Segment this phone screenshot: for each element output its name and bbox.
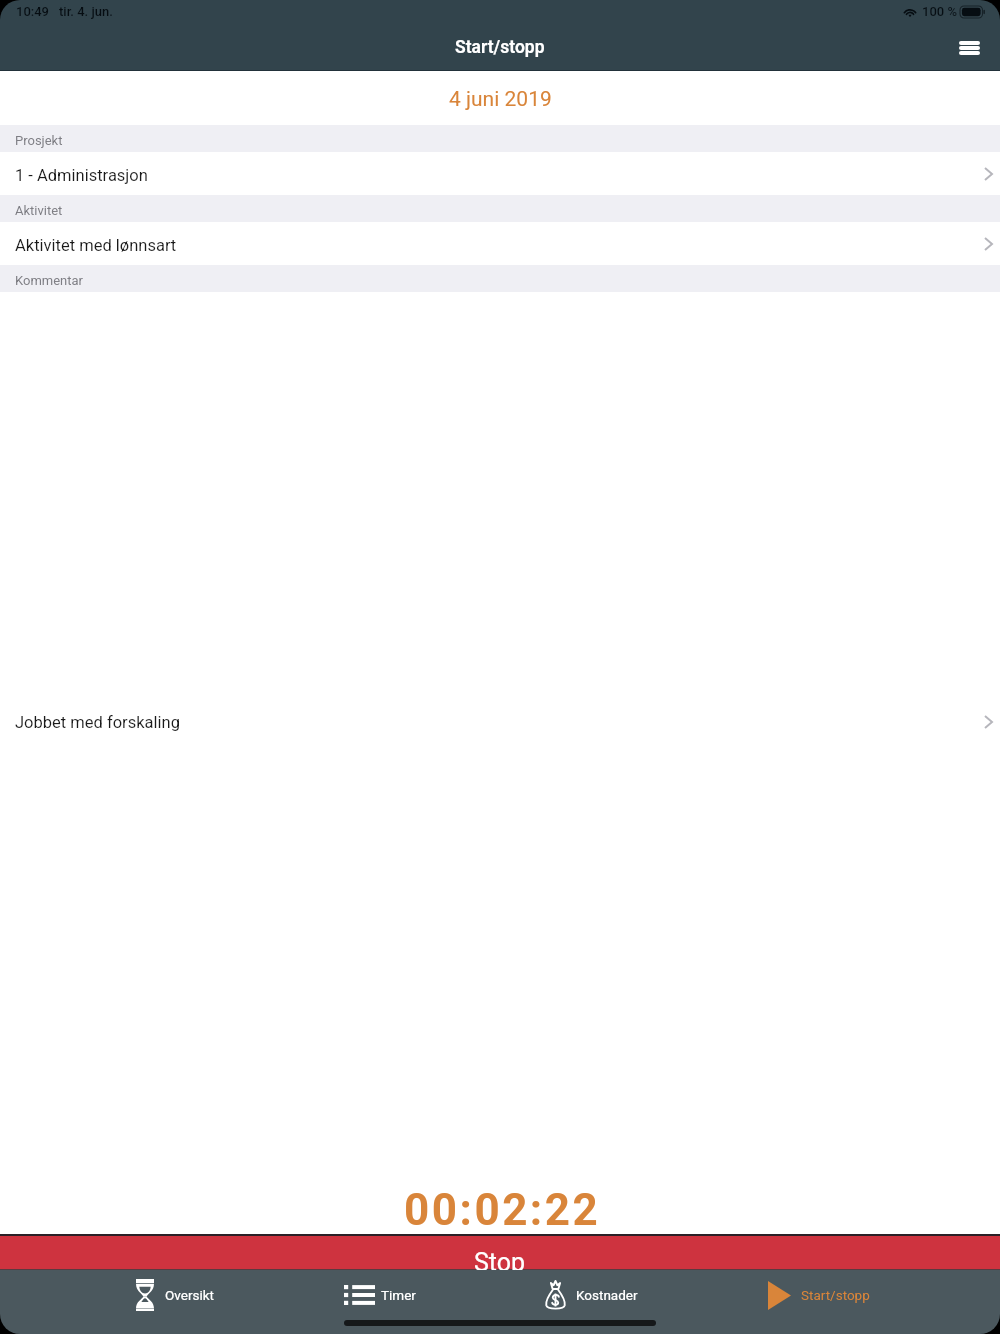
- staticText: 00:02:22: [404, 1184, 601, 1236]
- button[interactable]: Stop: [0, 1234, 1000, 1270]
- staticText: Start/stopp: [455, 37, 545, 58]
- button[interactable]: Kostnader: [545, 1270, 638, 1320]
- staticText: Oversikt: [165, 1287, 214, 1303]
- staticText: Jobbet med forskaling: [15, 713, 180, 732]
- staticText: 100 %: [922, 4, 957, 19]
- staticText: Aktivitet: [15, 203, 63, 218]
- staticText: 10:49: [16, 4, 49, 19]
- button[interactable]: Menu: [947, 27, 991, 71]
- staticText: Kommentar: [15, 273, 84, 288]
- staticText: Start/stopp: [801, 1287, 870, 1303]
- staticText: Stop: [474, 1248, 526, 1277]
- staticText: 1 - Administrasjon: [15, 166, 148, 185]
- staticText: tir. 4. jun.: [59, 4, 113, 19]
- staticText: Kostnader: [576, 1287, 638, 1303]
- button[interactable]: Jobbet med forskaling: [0, 292, 1000, 1152]
- button[interactable]: Start/stopp: [768, 1270, 870, 1320]
- button[interactable]: 1 - Administrasjon: [0, 152, 1000, 195]
- button[interactable]: Oversikt: [136, 1270, 214, 1320]
- staticText: 4 juni 2019: [449, 87, 552, 112]
- button[interactable]: 4 juni 2019: [0, 71, 1000, 125]
- staticText: Prosjekt: [15, 133, 63, 148]
- staticText: Timer: [381, 1287, 416, 1303]
- button[interactable]: Timer: [344, 1270, 416, 1320]
- button[interactable]: Aktivitet med lønnsart: [0, 222, 1000, 265]
- staticText: Aktivitet med lønnsart: [15, 236, 177, 255]
